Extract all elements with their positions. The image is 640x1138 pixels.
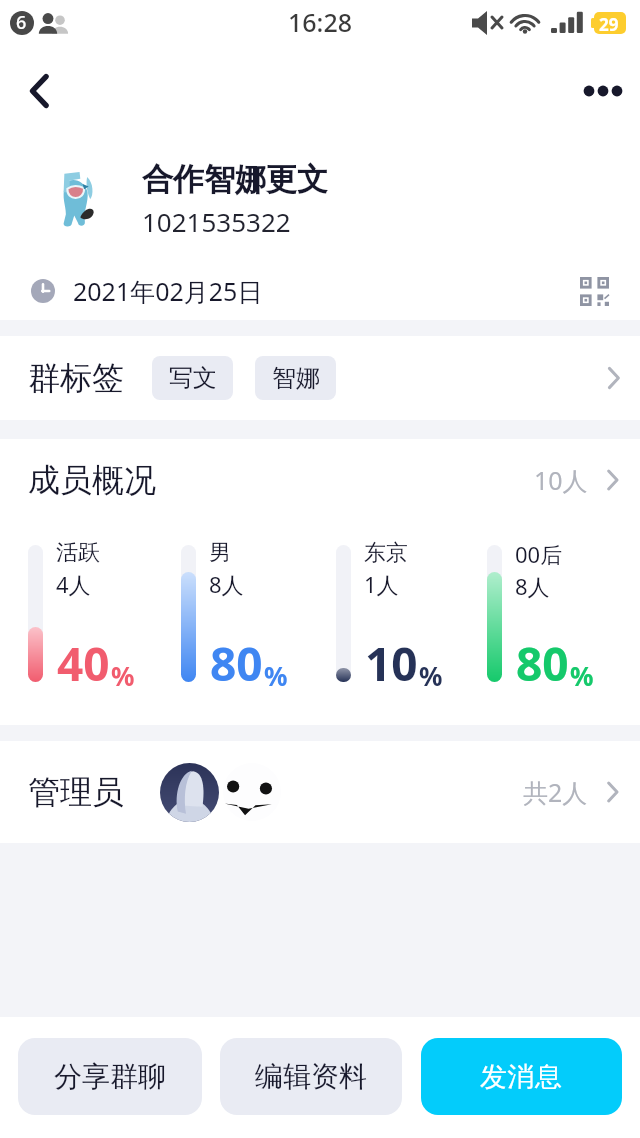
staticText: 40 xyxy=(57,632,110,695)
staticText: 写文 xyxy=(169,363,217,393)
staticText: 男 xyxy=(209,539,231,567)
button[interactable]: 成员概况 xyxy=(0,439,640,520)
staticText: 群标签 xyxy=(28,358,124,398)
button[interactable]: 写文 xyxy=(152,356,233,400)
staticText: 8人 xyxy=(515,571,550,601)
staticText: 29 xyxy=(599,13,619,36)
staticText: 智娜 xyxy=(272,363,320,393)
staticText: 合作智娜更文 xyxy=(142,160,328,199)
staticText: 1021535322 xyxy=(142,204,291,239)
button[interactable]: 发消息 xyxy=(421,1038,622,1115)
staticText: 6 xyxy=(16,10,27,35)
button[interactable]: QR code xyxy=(566,263,622,319)
staticText: 80 xyxy=(210,632,263,695)
button[interactable]: 群标签 xyxy=(0,336,640,420)
staticText: 活跃 xyxy=(56,539,100,567)
staticText: 16:28 xyxy=(288,5,353,39)
staticText: % xyxy=(111,658,135,693)
staticText: 1人 xyxy=(364,569,399,599)
staticText: 2021年02月25日 xyxy=(73,274,263,308)
staticText: 00后 xyxy=(515,539,563,569)
staticText: 4人 xyxy=(56,569,91,599)
button[interactable]: 智娜 xyxy=(255,356,336,400)
staticText: 管理员 xyxy=(28,772,124,812)
staticText: 8人 xyxy=(209,569,244,599)
button[interactable]: 合作智娜更文 xyxy=(0,136,640,262)
staticText: 发消息 xyxy=(480,1060,563,1094)
staticText: 共2人 xyxy=(523,775,588,809)
staticText: 东京 xyxy=(364,539,408,567)
button[interactable]: More options xyxy=(572,61,632,121)
staticText: 80 xyxy=(516,632,569,695)
button[interactable]: Back xyxy=(12,63,68,119)
staticText: 10 xyxy=(365,632,418,695)
button[interactable]: 管理员 xyxy=(0,741,640,843)
staticText: % xyxy=(264,658,288,693)
staticText: 10人 xyxy=(534,463,588,497)
button[interactable]: 编辑资料 xyxy=(220,1038,402,1115)
button[interactable]: 分享群聊 xyxy=(18,1038,202,1115)
staticText: 编辑资料 xyxy=(255,1059,367,1094)
button[interactable]: 2021年02月25日 xyxy=(0,262,640,320)
staticText: % xyxy=(570,658,594,693)
staticText: 成员概况 xyxy=(28,460,156,500)
staticText: % xyxy=(419,658,443,693)
staticText: 分享群聊 xyxy=(54,1059,166,1094)
